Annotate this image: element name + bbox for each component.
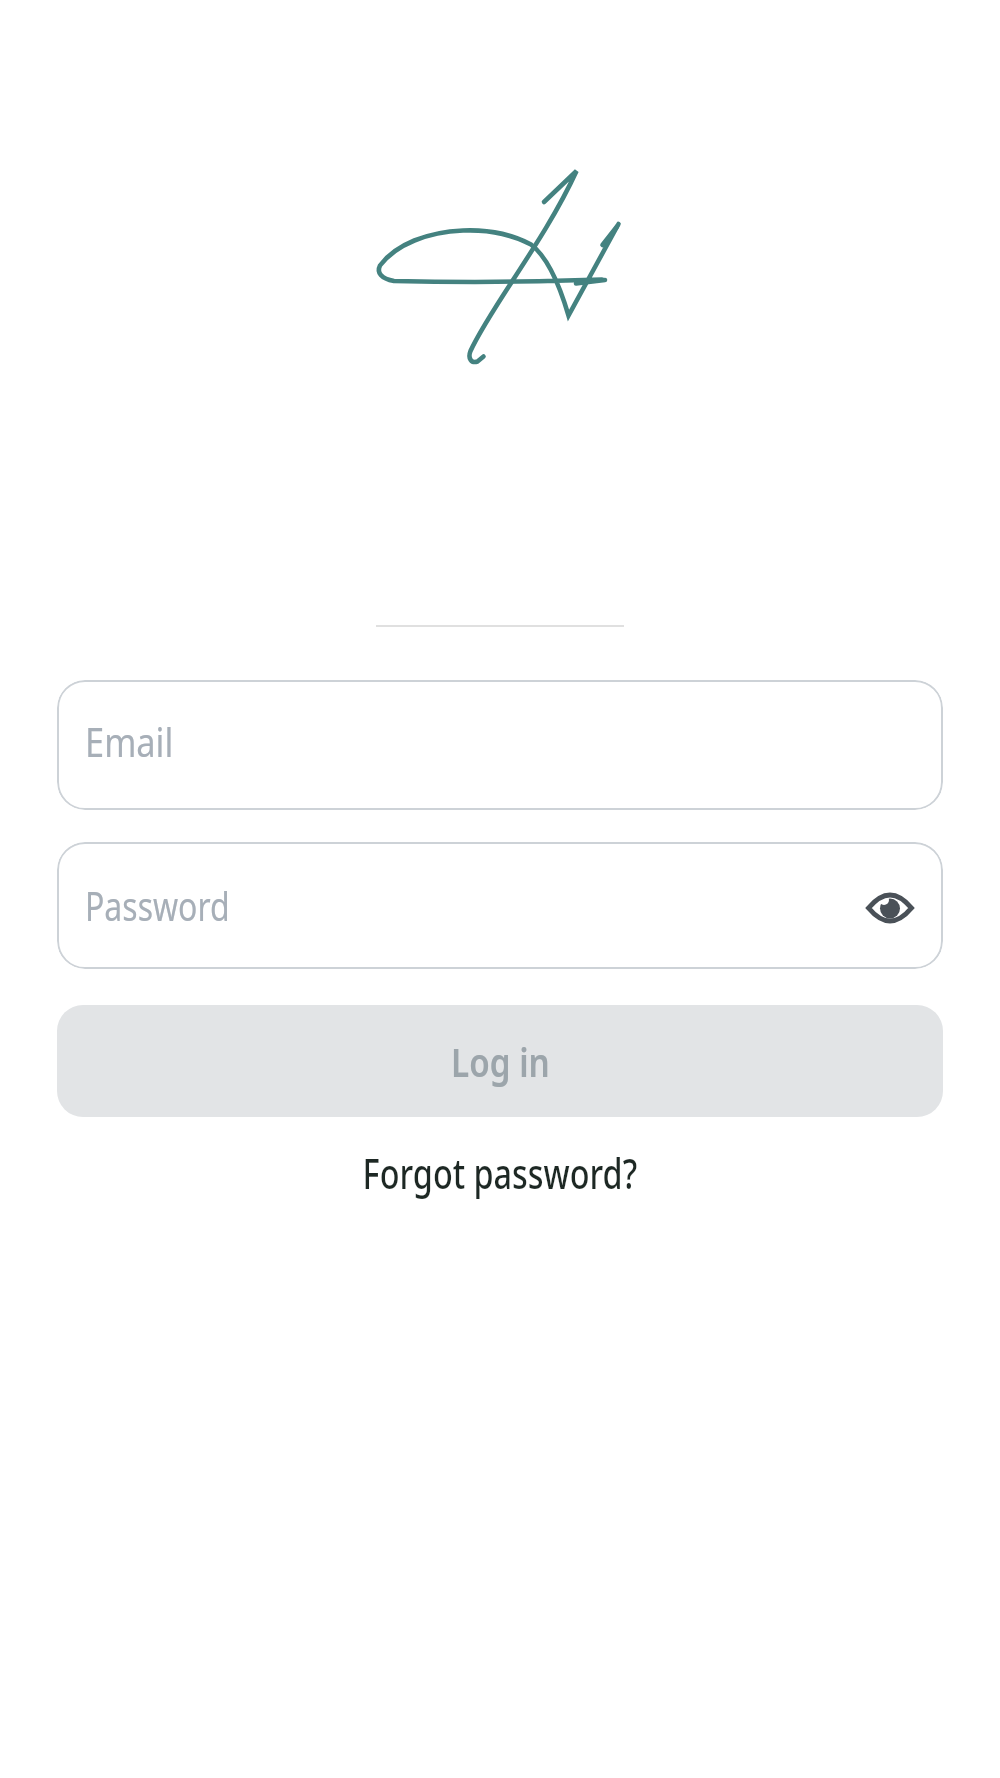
staticText: Log in (451, 1034, 550, 1088)
staticText: Password (85, 878, 230, 932)
staticText: Forgot password? (362, 1145, 637, 1201)
button[interactable]: Password (57, 842, 943, 969)
button[interactable]: Email (57, 680, 943, 810)
button[interactable] (865, 881, 915, 931)
staticText: Email (85, 714, 174, 768)
button[interactable]: Log in (57, 1005, 943, 1117)
button[interactable]: Forgot password? (314, 1137, 686, 1209)
